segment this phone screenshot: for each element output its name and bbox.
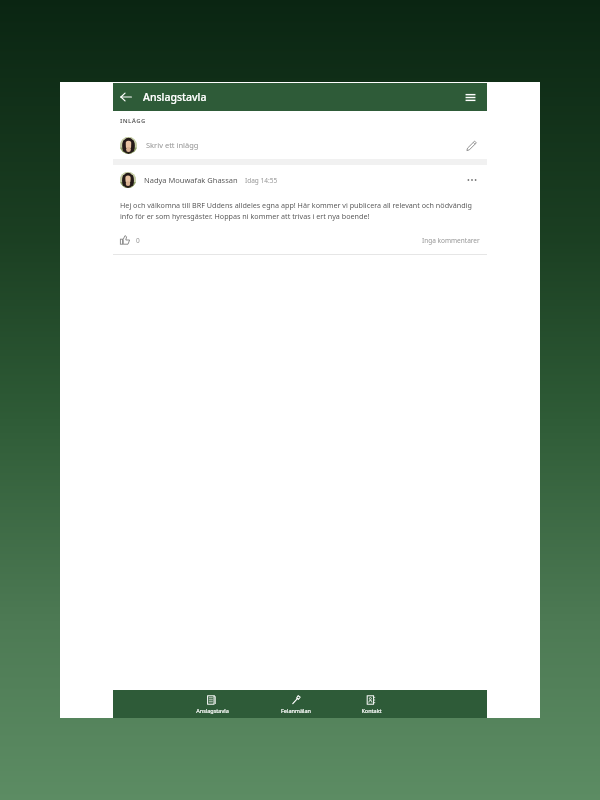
staticText: 0 — [136, 236, 140, 245]
button[interactable]: Menu — [457, 84, 483, 110]
button[interactable]: 0 — [113, 235, 146, 245]
staticText: Anslagstavla — [143, 90, 207, 104]
button[interactable]: Felanmälan — [261, 690, 331, 718]
staticText: Idag 14:55 — [245, 176, 278, 185]
staticText: INLÄGG — [120, 117, 146, 125]
staticText: Hej och välkomna till BRF Uddens alldele… — [120, 200, 480, 221]
button[interactable]: Back — [113, 84, 139, 110]
staticText: Kontakt — [361, 707, 382, 714]
staticText: Nadya Mouwafak Ghassan — [144, 175, 238, 185]
button[interactable]: Inga kommentarer — [422, 236, 487, 245]
button[interactable]: Anslagstavla — [173, 690, 251, 718]
button[interactable]: Kontakt — [341, 690, 401, 718]
staticText: Skriv ett inlägg — [146, 140, 199, 150]
button[interactable]: More options — [462, 170, 482, 190]
button[interactable]: Skriv ett inlägg — [113, 131, 487, 159]
staticText: Anslagstavla — [196, 707, 229, 714]
staticText: Felanmälan — [281, 707, 311, 714]
button[interactable]: Write post — [460, 134, 482, 156]
